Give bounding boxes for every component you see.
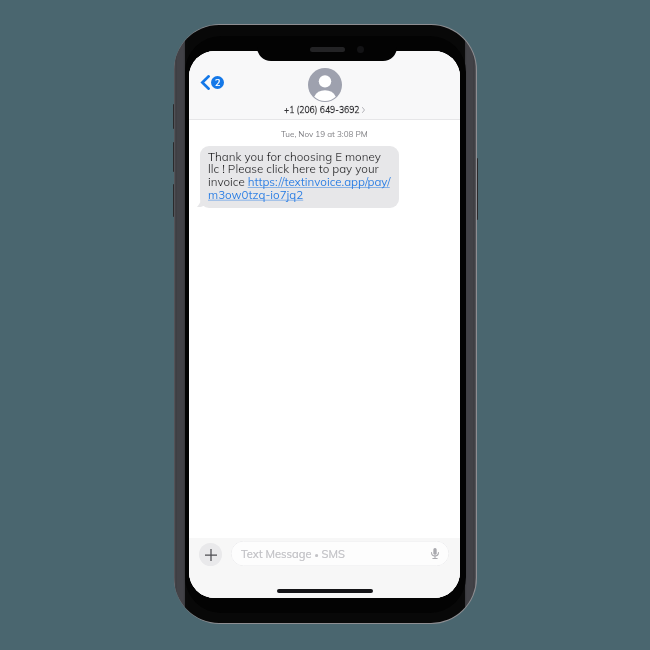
other: Voice message [431, 548, 439, 559]
button[interactable]: +1 (206) 649-3692 [189, 104, 460, 115]
button[interactable]: Contact info [308, 68, 342, 102]
staticText: Tue, Nov 19 at 3:08 PM [281, 129, 368, 139]
button[interactable]: Back [195, 69, 230, 96]
button[interactable]: Text Message • SMS [231, 541, 449, 566]
button[interactable]: Thank you for choosing E money llc ! Ple… [200, 146, 399, 208]
staticText: Text Message • SMS [241, 547, 345, 561]
staticText: +1 (206) 649-3692 [284, 104, 360, 115]
button[interactable]: Add attachment [199, 543, 222, 566]
staticText: 2 [215, 77, 221, 88]
staticText: Thank you for choosing E money llc ! Ple… [208, 149, 394, 202]
